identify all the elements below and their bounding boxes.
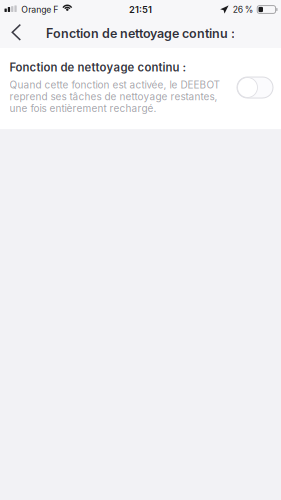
staticText: Quand cette fonction est activée, le DEE… (9, 79, 219, 91)
staticText: Orange F (21, 4, 58, 15)
staticText: 21:51 (129, 4, 152, 15)
staticText: reprend ses tâches de nettoyage restante… (9, 90, 217, 103)
button[interactable]: Fonction de nettoyage continu (237, 77, 273, 98)
staticText: 26 % (233, 4, 254, 15)
staticText: une fois entièrement rechargé. (9, 102, 156, 114)
staticText: Fonction de nettoyage continu : (46, 26, 235, 41)
button[interactable]: Back (2, 19, 30, 48)
staticText: Fonction de nettoyage continu : (9, 61, 186, 74)
